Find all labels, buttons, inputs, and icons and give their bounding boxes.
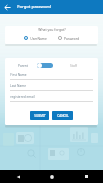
button[interactable]: Back [0,170,35,183]
button[interactable]: SUBMIT [30,111,49,120]
staticText: Parent [18,64,28,68]
staticText: Staff [70,64,77,68]
staticText: Forgot password [17,4,51,10]
staticText: UserName [30,36,47,40]
button[interactable]: Recent apps [69,170,103,183]
button[interactable]: CANCEL [52,111,73,120]
staticText: SUBMIT [34,114,46,118]
button[interactable]: UserName [24,36,47,40]
staticText: CANCEL [57,114,69,118]
staticText: registered email [10,95,35,99]
button[interactable]: Back [0,0,14,14]
button[interactable]: Password [58,36,79,40]
staticText: First Name [10,73,27,77]
button[interactable]: Home [35,170,69,183]
staticText: Password [64,36,79,40]
staticText: Last Name [10,84,26,88]
button[interactable] [37,63,53,68]
staticText: What you forgot? [38,27,66,32]
